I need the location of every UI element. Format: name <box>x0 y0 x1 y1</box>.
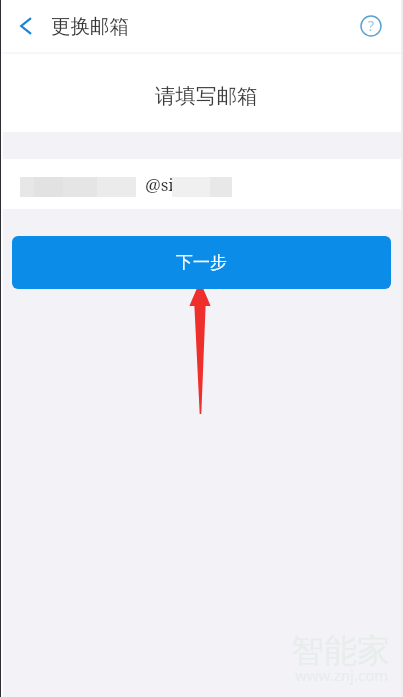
button[interactable]: Help <box>357 0 403 52</box>
staticText: @si <box>145 173 174 196</box>
button[interactable]: 下一步 <box>12 236 391 289</box>
button[interactable]: @si <box>0 159 403 209</box>
staticText: www.znj.com <box>295 665 389 685</box>
staticText: 请填写邮箱 <box>155 83 258 109</box>
staticText: 更换邮箱 <box>51 14 129 39</box>
staticText: 智能家 <box>291 630 390 672</box>
staticText: 下一步 <box>176 252 227 273</box>
staticText: ? <box>368 16 375 35</box>
button[interactable]: Back <box>0 0 46 52</box>
